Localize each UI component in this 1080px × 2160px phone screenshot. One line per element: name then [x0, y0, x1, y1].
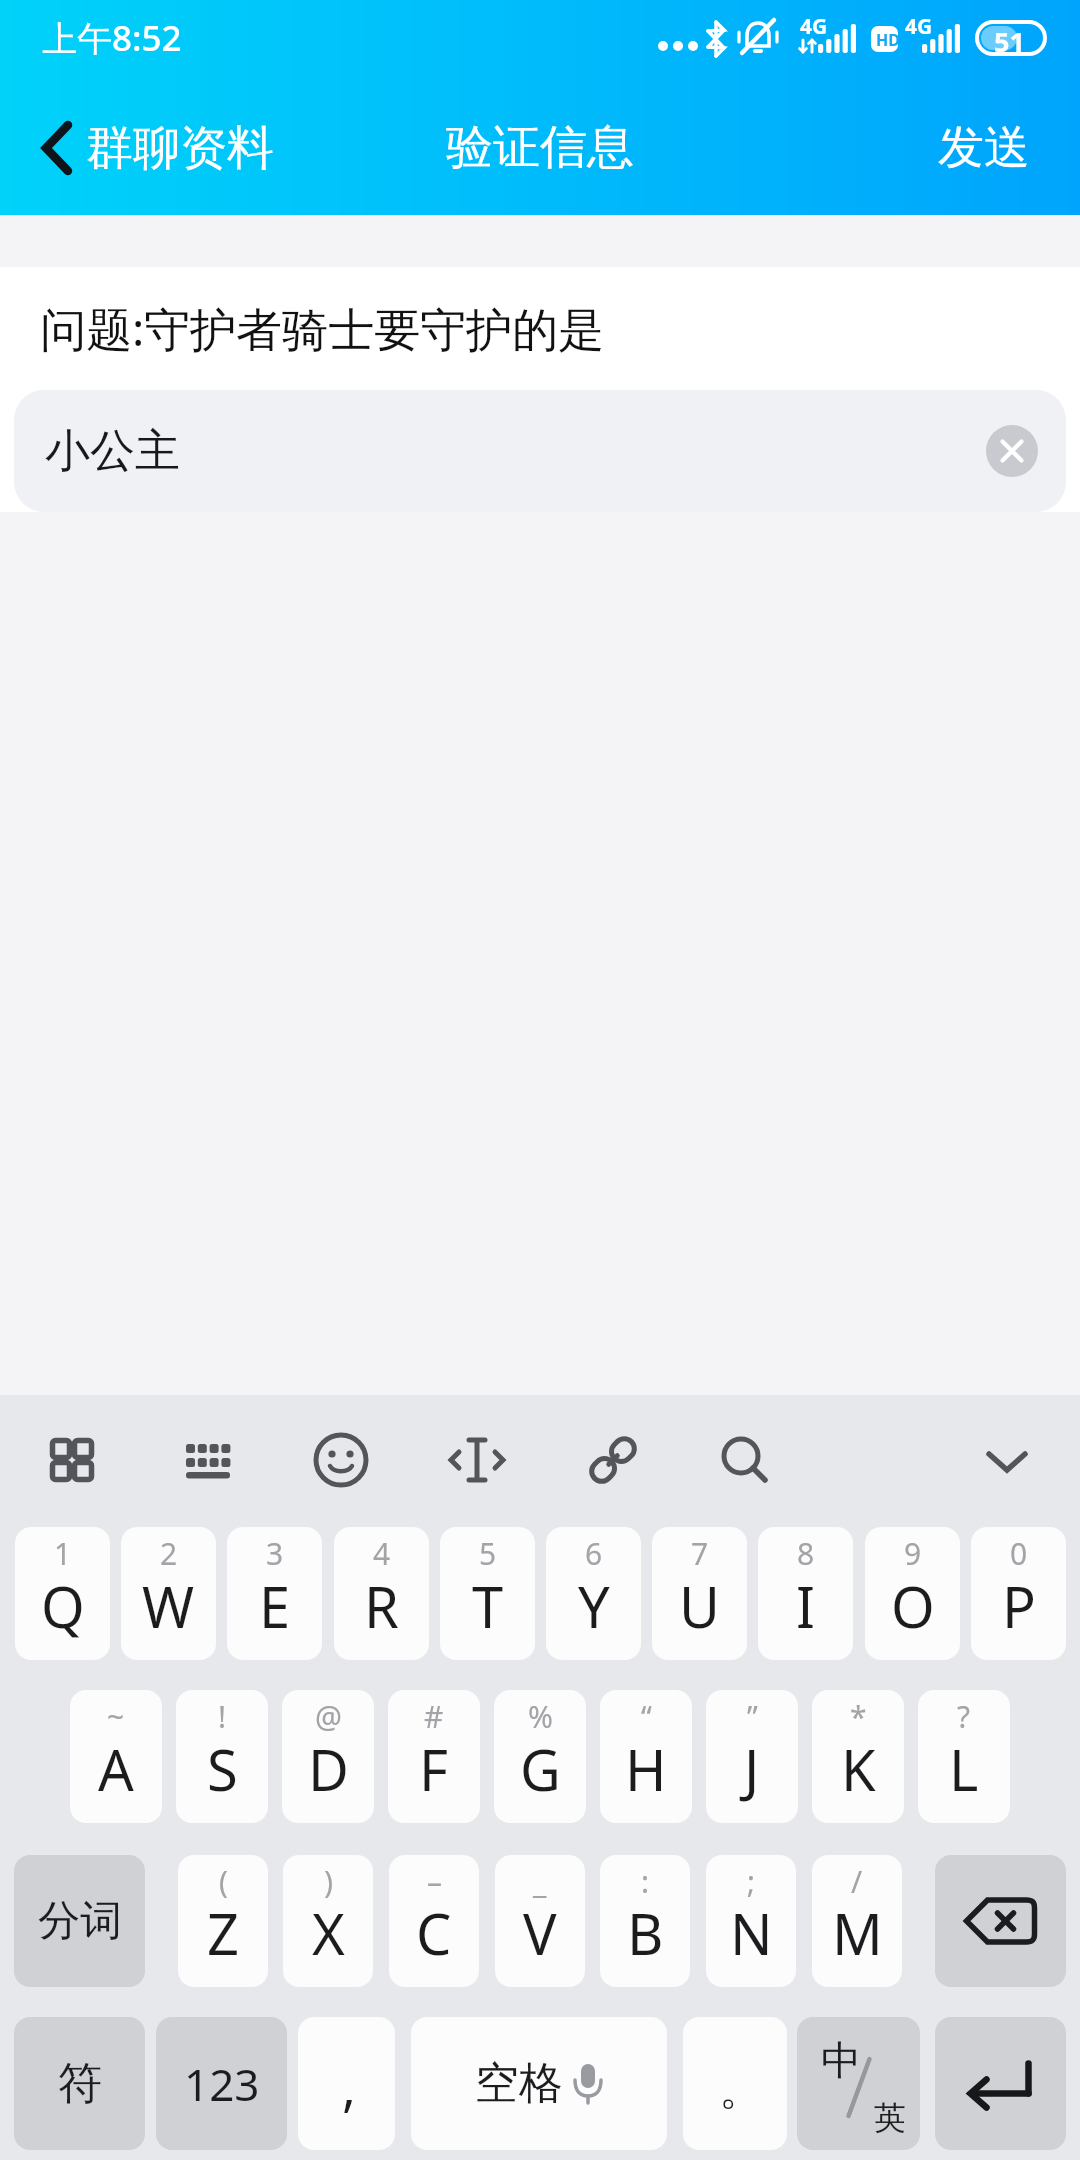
staticText: T	[472, 1568, 504, 1644]
button[interactable]: (	[178, 1855, 268, 1987]
button[interactable]	[935, 1855, 1066, 1987]
staticText: 小公主	[45, 423, 180, 480]
button[interactable]: %	[494, 1690, 586, 1823]
staticText: “	[641, 1696, 652, 1737]
button[interactable]: 群聊资料	[0, 118, 258, 178]
button[interactable]: _	[495, 1855, 585, 1987]
staticText: HD	[876, 29, 900, 51]
staticText: Z	[207, 1895, 240, 1971]
button[interactable]: 。	[683, 2017, 787, 2150]
button[interactable]: “	[600, 1690, 692, 1823]
button[interactable]: 4	[334, 1527, 429, 1660]
button[interactable]: 发送	[988, 119, 1080, 177]
staticText: C	[416, 1895, 452, 1971]
button[interactable]: 6	[546, 1527, 641, 1660]
button[interactable]: ,	[298, 2017, 395, 2150]
staticText: !	[218, 1696, 227, 1737]
button[interactable]: /	[812, 1855, 902, 1987]
staticText: @	[315, 1696, 342, 1737]
button[interactable]: :	[600, 1855, 690, 1987]
staticText: U	[679, 1568, 720, 1644]
button[interactable]: 3	[227, 1527, 322, 1660]
staticText: O	[891, 1568, 935, 1644]
staticText: 验证信息	[446, 118, 634, 177]
staticText: 1	[54, 1533, 72, 1574]
staticText: A	[98, 1731, 134, 1807]
staticText: B	[627, 1895, 664, 1971]
staticText: ?	[957, 1696, 971, 1737]
button[interactable]: ;	[706, 1855, 796, 1987]
button[interactable]	[935, 2017, 1066, 2150]
button[interactable]: ?	[918, 1690, 1010, 1823]
button[interactable]: 0	[971, 1527, 1066, 1660]
button[interactable]: ”	[706, 1690, 798, 1823]
button[interactable]: 问题:守护者骑士要守护的是	[0, 267, 1080, 390]
staticText: E	[259, 1568, 291, 1644]
staticText: S	[207, 1731, 238, 1807]
button[interactable]: –	[389, 1855, 479, 1987]
staticText: Y	[578, 1568, 610, 1644]
staticText: R	[364, 1568, 399, 1644]
staticText: 6	[585, 1533, 603, 1574]
button[interactable]: 空格	[411, 2017, 667, 2150]
staticText: J	[744, 1731, 760, 1807]
staticText: 符	[58, 2056, 102, 2111]
button[interactable]: 符	[14, 2017, 145, 2150]
staticText: Q	[41, 1568, 85, 1644]
staticText: 9	[904, 1533, 922, 1574]
button[interactable]: #	[388, 1690, 480, 1823]
staticText: ”	[747, 1696, 758, 1737]
button[interactable]	[975, 1428, 1039, 1492]
button[interactable]	[445, 1428, 509, 1492]
button[interactable]: 9	[865, 1527, 960, 1660]
button[interactable]: 2	[121, 1527, 216, 1660]
staticText: #	[424, 1696, 444, 1737]
button[interactable]	[309, 1428, 373, 1492]
staticText: 空格	[475, 2056, 563, 2111]
button[interactable]: @	[282, 1690, 374, 1823]
staticText: ,	[342, 2050, 356, 2121]
staticText: H	[625, 1731, 667, 1807]
button[interactable]: 5	[440, 1527, 535, 1660]
staticText: P	[1002, 1568, 1036, 1644]
button[interactable]: 7	[652, 1527, 747, 1660]
staticText: 问题:守护者骑士要守护的是	[40, 297, 605, 360]
button[interactable]	[40, 1428, 104, 1492]
staticText: N	[730, 1895, 773, 1971]
staticText: :	[641, 1861, 650, 1902]
button[interactable]: )	[283, 1855, 373, 1987]
staticText: L	[949, 1731, 979, 1807]
button[interactable]: 123	[156, 2017, 287, 2150]
staticText: 123	[184, 2054, 260, 2114]
staticText: F	[419, 1731, 449, 1807]
staticText: X	[312, 1895, 345, 1971]
staticText: –	[427, 1861, 442, 1902]
staticText: ;	[747, 1861, 756, 1902]
staticText: V	[523, 1895, 557, 1971]
staticText: M	[832, 1895, 883, 1971]
button[interactable]: ~	[70, 1690, 162, 1823]
button[interactable]: 中	[797, 2017, 920, 2150]
staticText: W	[142, 1568, 195, 1644]
button[interactable]	[986, 425, 1038, 477]
button[interactable]: 8	[758, 1527, 853, 1660]
staticText: I	[796, 1568, 815, 1644]
staticText: _	[533, 1861, 547, 1902]
staticText: 8	[797, 1533, 815, 1574]
button[interactable]: 1	[15, 1527, 110, 1660]
staticText: 。	[719, 2062, 763, 2117]
button[interactable]: 小公主	[14, 390, 1066, 512]
button[interactable]: 分词	[14, 1855, 145, 1987]
staticText: 7	[691, 1533, 709, 1574]
staticText: *	[850, 1696, 867, 1737]
staticText: 4G	[905, 12, 933, 41]
button[interactable]	[176, 1428, 240, 1492]
staticText: 51	[994, 23, 1025, 60]
staticText: K	[841, 1731, 876, 1807]
staticText: ~	[107, 1696, 125, 1737]
button[interactable]: !	[176, 1690, 268, 1823]
button[interactable]	[713, 1428, 777, 1492]
staticText: /	[851, 1861, 863, 1902]
button[interactable]	[581, 1428, 645, 1492]
button[interactable]: *	[812, 1690, 904, 1823]
